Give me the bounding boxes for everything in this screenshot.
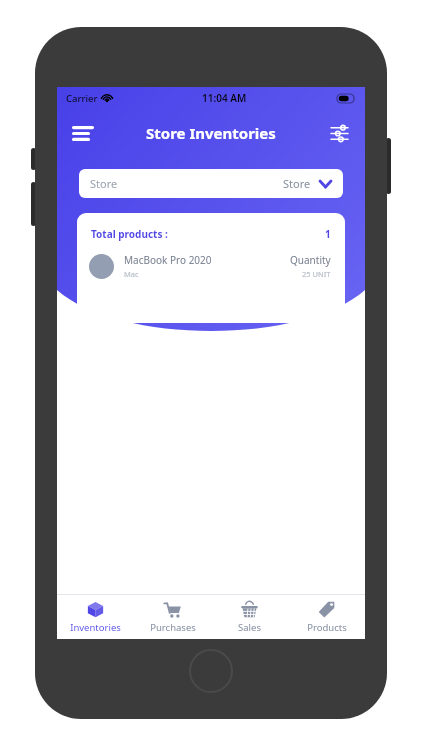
- staticText: Store: [90, 176, 118, 191]
- staticText: Products: [307, 621, 347, 634]
- button[interactable]: Sales: [211, 595, 288, 639]
- staticText: Quantity: [290, 253, 331, 267]
- button[interactable]: Total products :: [77, 213, 345, 323]
- staticText: 11:04 AM: [202, 91, 247, 105]
- staticText: Sales: [238, 621, 261, 634]
- staticText: Inventories: [70, 621, 121, 634]
- button[interactable]: Menu: [66, 116, 100, 150]
- button[interactable]: Inventories: [57, 595, 134, 639]
- button[interactable]: Products: [288, 595, 365, 639]
- button[interactable]: Purchases: [134, 595, 211, 639]
- staticText: 1: [325, 227, 331, 241]
- staticText: Store Inventories: [146, 123, 276, 143]
- staticText: MacBook Pro 2020: [124, 253, 212, 267]
- staticText: Purchases: [150, 621, 196, 634]
- staticText: 25 UNIT: [302, 269, 331, 279]
- staticText: Total products :: [91, 227, 168, 241]
- staticText: Store: [283, 176, 311, 191]
- button[interactable]: Store: [79, 169, 343, 198]
- staticText: Carrier: [66, 92, 98, 105]
- button[interactable]: Filter: [323, 117, 355, 149]
- staticText: Mac: [124, 269, 139, 279]
- button[interactable]: MacBook Pro 2020: [77, 253, 345, 279]
